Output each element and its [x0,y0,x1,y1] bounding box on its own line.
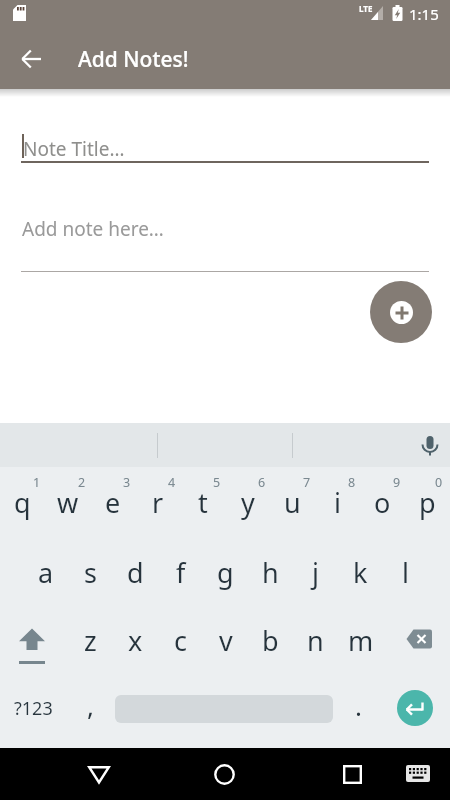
staticText: d [127,554,144,591]
button[interactable]: s [68,541,113,603]
button[interactable]: y [225,473,270,531]
button[interactable] [370,281,432,343]
button[interactable] [10,44,54,74]
button[interactable] [20,120,430,165]
staticText: ?123 [14,696,53,721]
button[interactable]: q [0,473,45,531]
button[interactable]: g [203,541,248,603]
staticText: o [374,484,391,521]
staticText: i [334,484,341,521]
button[interactable]: l [383,541,428,603]
staticText: 1:15 [409,4,439,24]
staticText: c [174,622,187,659]
button[interactable]: c [158,609,203,671]
button[interactable]: p [405,473,450,531]
button[interactable]: d [113,541,158,603]
button[interactable]: f [158,541,203,603]
staticText: 0 [435,474,443,490]
button[interactable]: z [68,609,113,671]
button[interactable]: e [90,473,135,531]
staticText: Add note here… [22,216,164,242]
staticText: 5 [213,474,221,490]
staticText: m [348,622,374,659]
button[interactable]: . [338,680,378,730]
button[interactable]: v [203,609,248,671]
button[interactable]: , [70,680,110,730]
staticText: LTE [359,3,373,14]
button[interactable]: a [23,541,68,603]
staticText: 2 [78,474,86,490]
staticText: 1 [33,474,41,490]
staticText: u [284,484,301,521]
staticText: n [307,622,324,659]
staticText: 6 [258,474,266,490]
staticText: p [419,484,436,521]
button[interactable]: h [248,541,293,603]
staticText: t [198,484,208,521]
staticText: j [312,554,319,591]
button[interactable] [398,755,438,791]
button[interactable]: o [360,473,405,531]
button[interactable]: ?123 [2,680,64,736]
staticText: 9 [393,474,401,490]
staticText: h [262,554,279,591]
button[interactable] [392,612,446,666]
staticText: k [353,554,368,591]
staticText: 3 [123,474,131,490]
button[interactable] [412,427,448,463]
staticText: x [128,622,143,659]
staticText: 7 [303,474,311,490]
staticText: s [84,554,97,591]
staticText: b [262,622,279,659]
staticText: z [84,622,97,659]
button[interactable]: j [293,541,338,603]
staticText: Add Notes! [78,45,189,74]
button[interactable] [4,610,60,666]
button[interactable]: k [338,541,383,603]
staticText: f [176,554,186,591]
button[interactable]: t [180,473,225,531]
staticText: y [241,484,255,521]
staticText: q [14,484,31,521]
staticText: , [87,688,94,723]
staticText: l [402,554,409,591]
button[interactable] [330,752,375,797]
staticText: Note Title… [23,136,125,162]
button[interactable]: b [248,609,293,671]
button[interactable]: m [338,609,383,671]
button[interactable]: u [270,473,315,531]
staticText: g [217,554,234,591]
button[interactable] [202,752,247,797]
button[interactable]: w [45,473,90,531]
button[interactable] [76,752,121,797]
button[interactable]: x [113,609,158,671]
staticText: 4 [168,474,176,490]
button[interactable] [20,205,430,273]
staticText: r [152,484,164,521]
button[interactable]: i [315,473,360,531]
staticText: w [57,484,79,521]
button[interactable] [397,690,433,726]
staticText: a [38,554,54,591]
staticText: 8 [348,474,356,490]
button[interactable]: n [293,609,338,671]
staticText: v [219,622,233,659]
staticText: e [105,484,121,521]
button[interactable]: r [135,473,180,531]
staticText: . [355,688,362,723]
